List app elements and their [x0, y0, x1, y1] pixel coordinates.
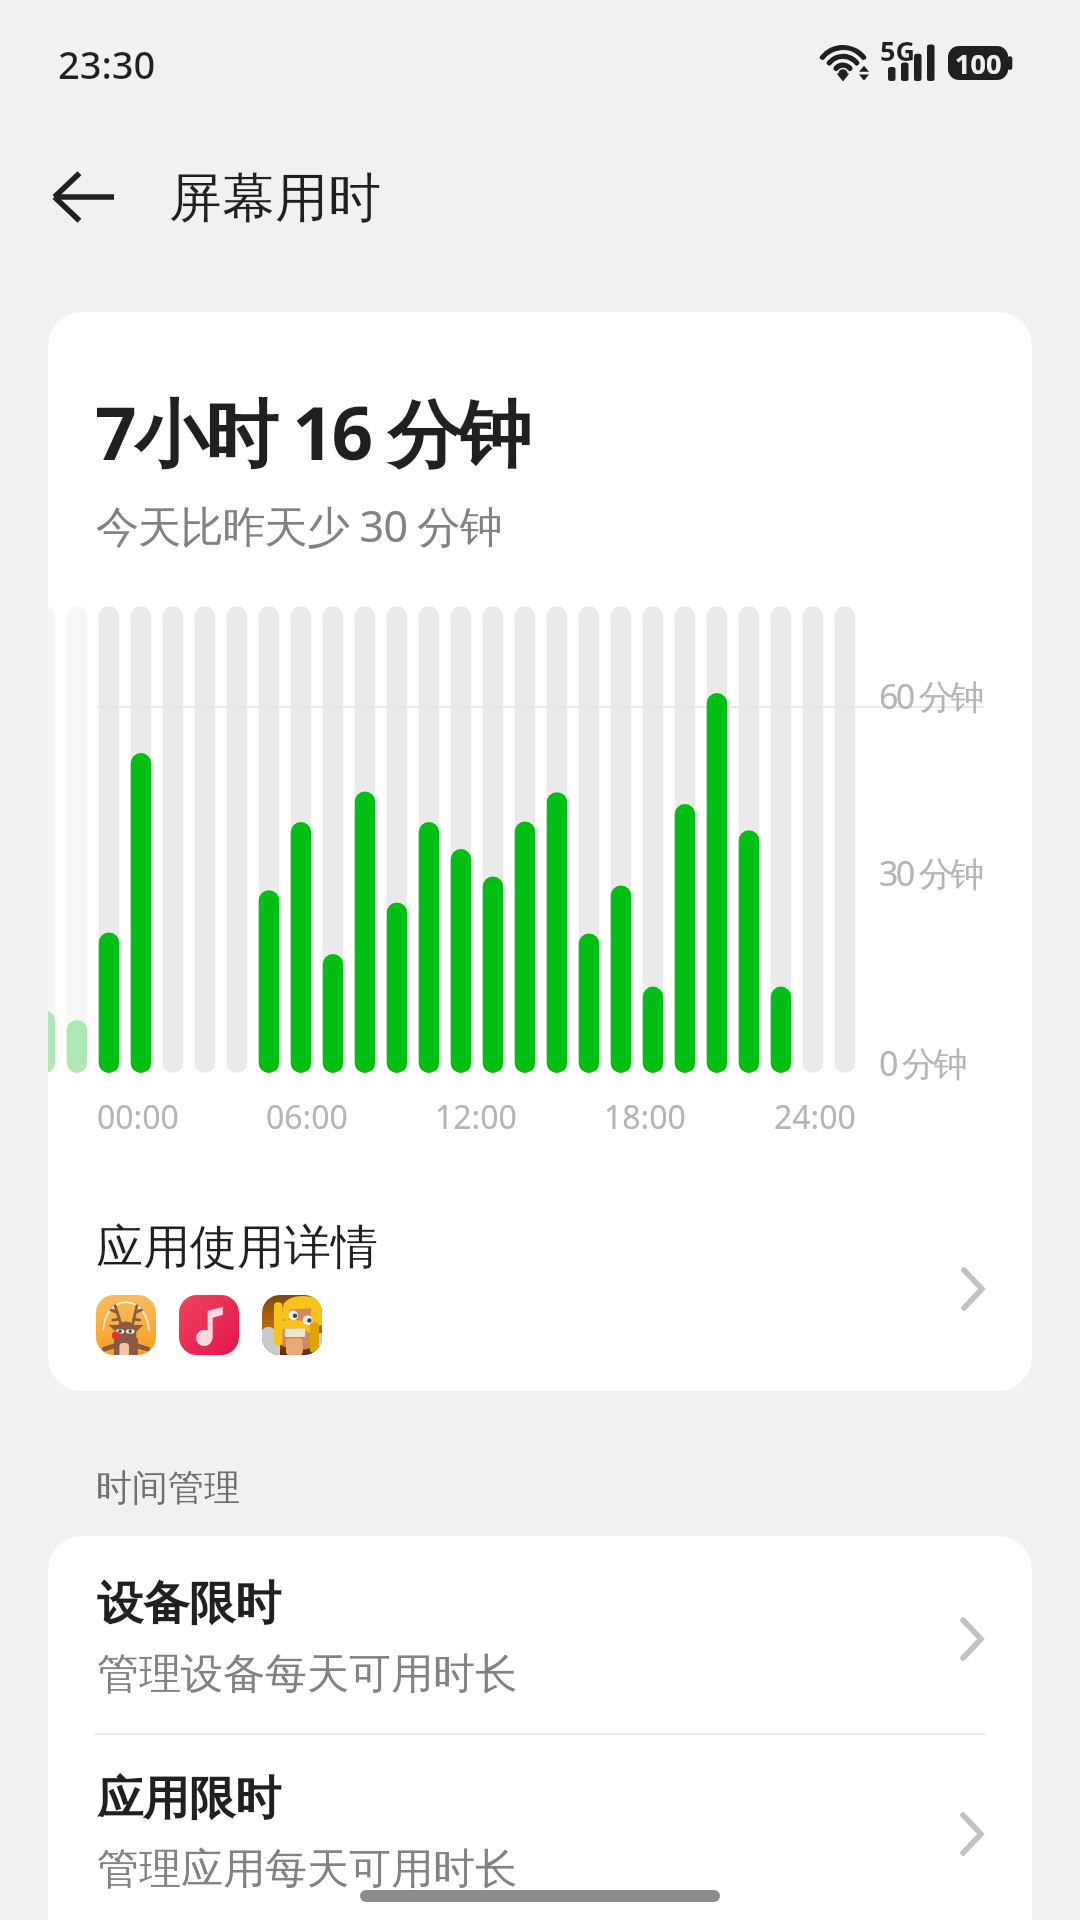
staticText: 管理设备每天可用时长 — [97, 1648, 517, 1701]
staticText: 30 分钟 — [879, 850, 982, 896]
button[interactable]: 设备限时 — [48, 1536, 1032, 1731]
staticText: 60 分钟 — [879, 673, 982, 719]
button[interactable]: 应用限时 — [48, 1731, 1032, 1920]
staticText: 屏幕用时 — [169, 165, 381, 232]
staticText: 12:00 — [435, 1095, 517, 1139]
staticText: 时间管理 — [96, 1465, 240, 1510]
staticText: 设备限时 — [97, 1575, 281, 1633]
staticText: 100 — [955, 45, 1002, 79]
staticText: 今天比昨天少 30 分钟 — [96, 496, 502, 555]
staticText: 应用限时 — [97, 1770, 281, 1828]
staticText: 24:00 — [774, 1095, 856, 1139]
staticText: 23:30 — [58, 38, 156, 90]
staticText: 7小时 16 分钟 — [95, 382, 529, 482]
button[interactable]: Back — [36, 149, 132, 245]
staticText: 0 分钟 — [879, 1040, 965, 1086]
staticText: 5G — [880, 32, 915, 69]
staticText: 管理应用每天可用时长 — [97, 1843, 517, 1896]
button[interactable]: 应用使用详情 — [48, 1188, 1032, 1391]
staticText: 应用使用详情 — [96, 1218, 378, 1277]
staticText: 00:00 — [97, 1095, 179, 1139]
staticText: 18:00 — [604, 1095, 686, 1139]
staticText: 06:00 — [266, 1095, 348, 1139]
